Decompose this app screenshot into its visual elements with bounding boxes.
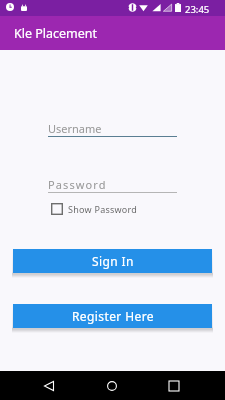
staticText: Sign In [92, 253, 134, 269]
staticText: Register Here [72, 308, 154, 324]
button[interactable]: Back [37, 374, 61, 398]
staticText: Show Password [68, 203, 138, 215]
button[interactable]: Show Password [51, 203, 138, 215]
button[interactable]: Sign In [13, 249, 212, 273]
staticText: Password [48, 177, 107, 192]
staticText: Username [48, 121, 102, 136]
button[interactable]: Register Here [13, 304, 212, 328]
button[interactable]: Home [100, 374, 124, 398]
staticText: 23:45 [185, 3, 210, 16]
button[interactable]: Recent apps [162, 374, 186, 398]
staticText: Kle Placement [14, 25, 98, 42]
